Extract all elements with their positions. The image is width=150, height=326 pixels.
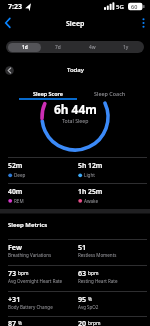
button[interactable]: 5h 12m	[78, 161, 142, 181]
staticText: 1h 25m	[78, 187, 103, 196]
button[interactable]: 51	[78, 242, 144, 262]
button[interactable]: 52m	[8, 161, 72, 181]
button[interactable]: 7d	[41, 41, 75, 53]
staticText: 87	[8, 318, 17, 326]
button[interactable]: 20	[78, 318, 144, 326]
staticText: 1d	[22, 44, 28, 51]
staticText: Light	[84, 172, 95, 178]
staticText: 7:23	[8, 2, 22, 12]
staticText: 7d	[55, 44, 61, 51]
button[interactable]: 1d	[8, 43, 41, 52]
staticText: bpm	[18, 270, 29, 277]
staticText: Deep	[14, 172, 26, 178]
staticText: REM	[14, 198, 24, 204]
staticText: Today	[67, 66, 84, 74]
button[interactable]	[2, 63, 17, 78]
staticText: Avg Overnight Heart Rate	[8, 278, 63, 284]
staticText: 5h 12m	[78, 161, 103, 170]
staticText: Awake	[84, 198, 99, 204]
staticText: Sleep Score	[33, 90, 63, 97]
staticText: Resting Heart Rate	[78, 278, 118, 284]
staticText: 40m	[8, 187, 23, 196]
button[interactable]: Few	[8, 242, 74, 262]
staticText: 95	[78, 294, 87, 304]
staticText: 5G	[116, 3, 124, 11]
staticText: Sleep Metrics	[8, 221, 48, 229]
staticText: Sleep	[66, 19, 85, 29]
staticText: Breathing Variations	[8, 252, 52, 258]
button[interactable]: 63	[78, 268, 144, 288]
staticText: brpm	[88, 320, 101, 326]
staticText: Sleep Coach	[94, 90, 126, 97]
button[interactable]: 1h 25m	[78, 187, 142, 207]
button[interactable]: 87	[8, 318, 74, 326]
staticText: +31	[8, 294, 21, 304]
button[interactable]: 73	[8, 268, 74, 288]
button[interactable]	[0, 14, 24, 32]
button[interactable]	[134, 14, 150, 32]
staticText: %	[88, 296, 92, 303]
button[interactable]: 40m	[8, 187, 72, 207]
staticText: bpm	[88, 270, 99, 277]
staticText: Avg SpO2	[78, 304, 99, 310]
staticText: 52m	[8, 161, 23, 170]
staticText: 73	[8, 268, 17, 278]
staticText: 51	[78, 242, 87, 252]
button[interactable]: Sleep Coach	[82, 86, 138, 100]
button[interactable]: 1y	[109, 41, 143, 53]
staticText: 6h 44m	[54, 101, 97, 117]
staticText: 63	[78, 268, 87, 278]
staticText: 60	[131, 3, 138, 10]
button[interactable]: 4w	[75, 41, 109, 53]
staticText: Few	[8, 242, 22, 252]
staticText: 20	[78, 318, 87, 326]
button[interactable]: 95	[78, 294, 144, 314]
button[interactable]: +31	[8, 294, 74, 314]
staticText: Total Sleep	[62, 117, 89, 124]
staticText: 4w	[89, 44, 96, 51]
staticText: %	[18, 320, 22, 326]
staticText: Restless Moments	[78, 252, 117, 258]
staticText: Body Battery Change	[8, 304, 53, 310]
button[interactable]: Sleep Score	[12, 86, 84, 100]
staticText: 1y	[123, 44, 129, 51]
